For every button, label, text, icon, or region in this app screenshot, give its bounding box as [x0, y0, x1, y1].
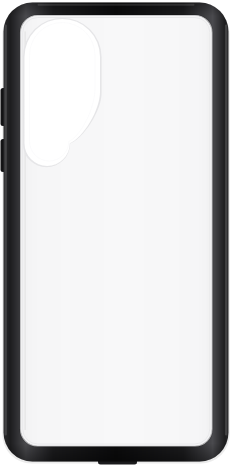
other: Clear phone case with black bumper	[0, 0, 234, 465]
